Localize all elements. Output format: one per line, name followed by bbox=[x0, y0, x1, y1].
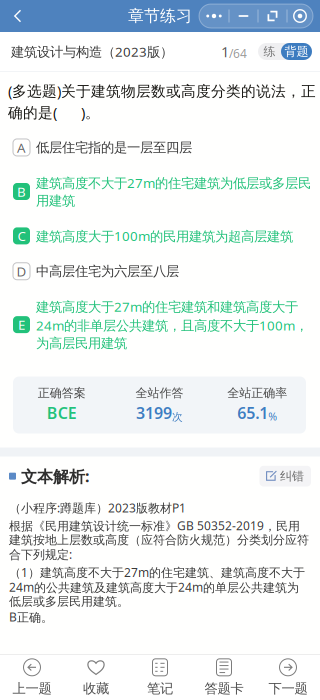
staticText: 正确答案 bbox=[38, 385, 86, 400]
button[interactable]: 下一题 bbox=[256, 650, 320, 700]
staticText: 练 bbox=[263, 44, 275, 59]
staticText: 建筑高度大于100m的民用建筑为超高层建筑 bbox=[36, 227, 293, 245]
staticText: C bbox=[17, 227, 25, 245]
staticText: (多选题)关于建筑物层数或高度分类的说法，正确的是( )。 bbox=[8, 81, 316, 122]
staticText: 收藏 bbox=[83, 680, 109, 697]
button[interactable]: 答题卡 bbox=[192, 650, 256, 700]
staticText: 次 bbox=[172, 410, 183, 423]
button[interactable]: 上一题 bbox=[0, 650, 64, 700]
button[interactable]: More bbox=[199, 4, 313, 28]
button[interactable]: C bbox=[0, 218, 320, 254]
staticText: 全站正确率 bbox=[227, 385, 287, 400]
staticText: 背题 bbox=[284, 44, 308, 59]
staticText: B bbox=[17, 183, 26, 200]
staticText: 纠错 bbox=[280, 469, 304, 483]
staticText: 章节练习 bbox=[128, 6, 192, 26]
staticText: （小程序:蹲题库）2023版教材P1 bbox=[9, 500, 186, 516]
button[interactable]: 收藏 bbox=[64, 650, 128, 700]
staticText: 低层住宅指的是一层至四层 bbox=[36, 139, 192, 156]
button[interactable]: Back bbox=[0, 0, 36, 32]
staticText: （1）建筑高度不大于27m的住宅建筑、建筑高度不大于24m的公共建筑及建筑高度大… bbox=[9, 564, 305, 609]
staticText: 笔记 bbox=[147, 680, 173, 697]
staticText: 下一题 bbox=[268, 680, 307, 697]
staticText: 65.1 bbox=[237, 402, 268, 423]
staticText: 全站作答 bbox=[135, 385, 183, 400]
staticText: /64 bbox=[229, 45, 247, 61]
staticText: 中高层住宅为六层至八层 bbox=[36, 263, 179, 279]
staticText: 建筑高度不大于27m的住宅建筑为低层或多层民用建筑 bbox=[36, 174, 311, 209]
staticText: 文本解析: bbox=[21, 465, 89, 487]
button[interactable]: E bbox=[0, 289, 320, 360]
button[interactable]: 练 bbox=[258, 43, 281, 60]
button[interactable]: 纠错 bbox=[259, 466, 311, 486]
staticText: B正确。 bbox=[9, 609, 53, 625]
staticText: E bbox=[18, 316, 25, 333]
staticText: D bbox=[16, 262, 26, 280]
staticText: 1 bbox=[221, 42, 229, 61]
staticText: A bbox=[17, 139, 26, 156]
staticText: 根据《民用建筑设计统一标准》GB 50352-2019，民用建筑按地上层数或高度… bbox=[9, 518, 309, 562]
staticText: 3199 bbox=[136, 402, 172, 423]
button[interactable]: 背题 bbox=[281, 43, 312, 60]
staticText: % bbox=[268, 409, 277, 424]
button[interactable]: 笔记 bbox=[128, 650, 192, 700]
button[interactable]: D bbox=[0, 254, 320, 289]
button[interactable]: B bbox=[0, 165, 320, 218]
staticText: 上一题 bbox=[12, 680, 51, 697]
button[interactable]: A bbox=[0, 130, 320, 165]
staticText: 建筑高度大于27m的住宅建筑和建筑高度大于24m的非单层公共建筑，且高度不大于1… bbox=[36, 298, 308, 351]
staticText: BCE bbox=[47, 402, 77, 423]
staticText: 答题卡 bbox=[204, 680, 243, 697]
staticText: 建筑设计与构造（2023版） bbox=[11, 43, 173, 60]
